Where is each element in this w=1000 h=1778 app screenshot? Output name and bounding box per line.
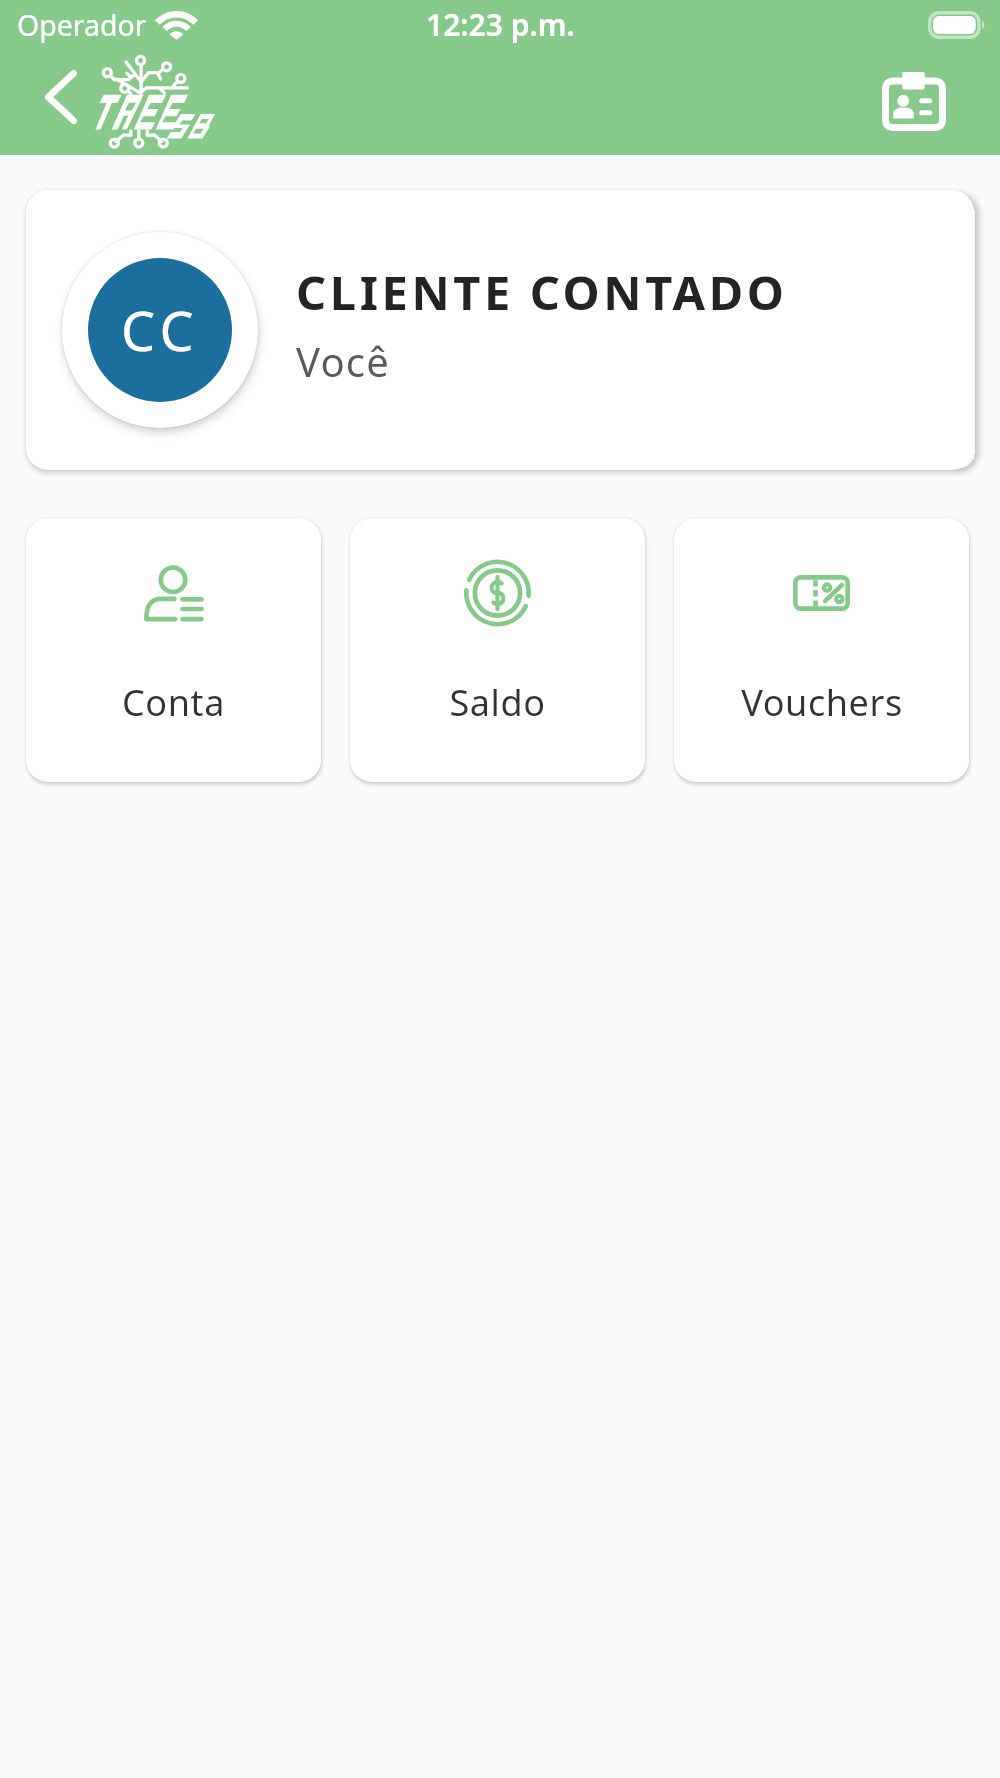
button[interactable]: Credencial [870,60,958,148]
button[interactable]: Saldo [350,518,645,782]
staticText: CLIENTE CONTADO [296,260,788,324]
button[interactable]: CC [26,190,974,470]
staticText: Conta [122,678,225,727]
button[interactable]: Conta [26,518,321,782]
staticText: Operador [17,6,147,45]
button[interactable]: Voltar [30,69,86,139]
staticText: 12:23 p.m. [426,4,575,45]
staticText: CC [121,293,200,367]
button[interactable]: Vouchers [674,518,969,782]
staticText: Vouchers [741,678,903,727]
staticText: Saldo [449,678,546,727]
staticText: Você [296,334,390,388]
